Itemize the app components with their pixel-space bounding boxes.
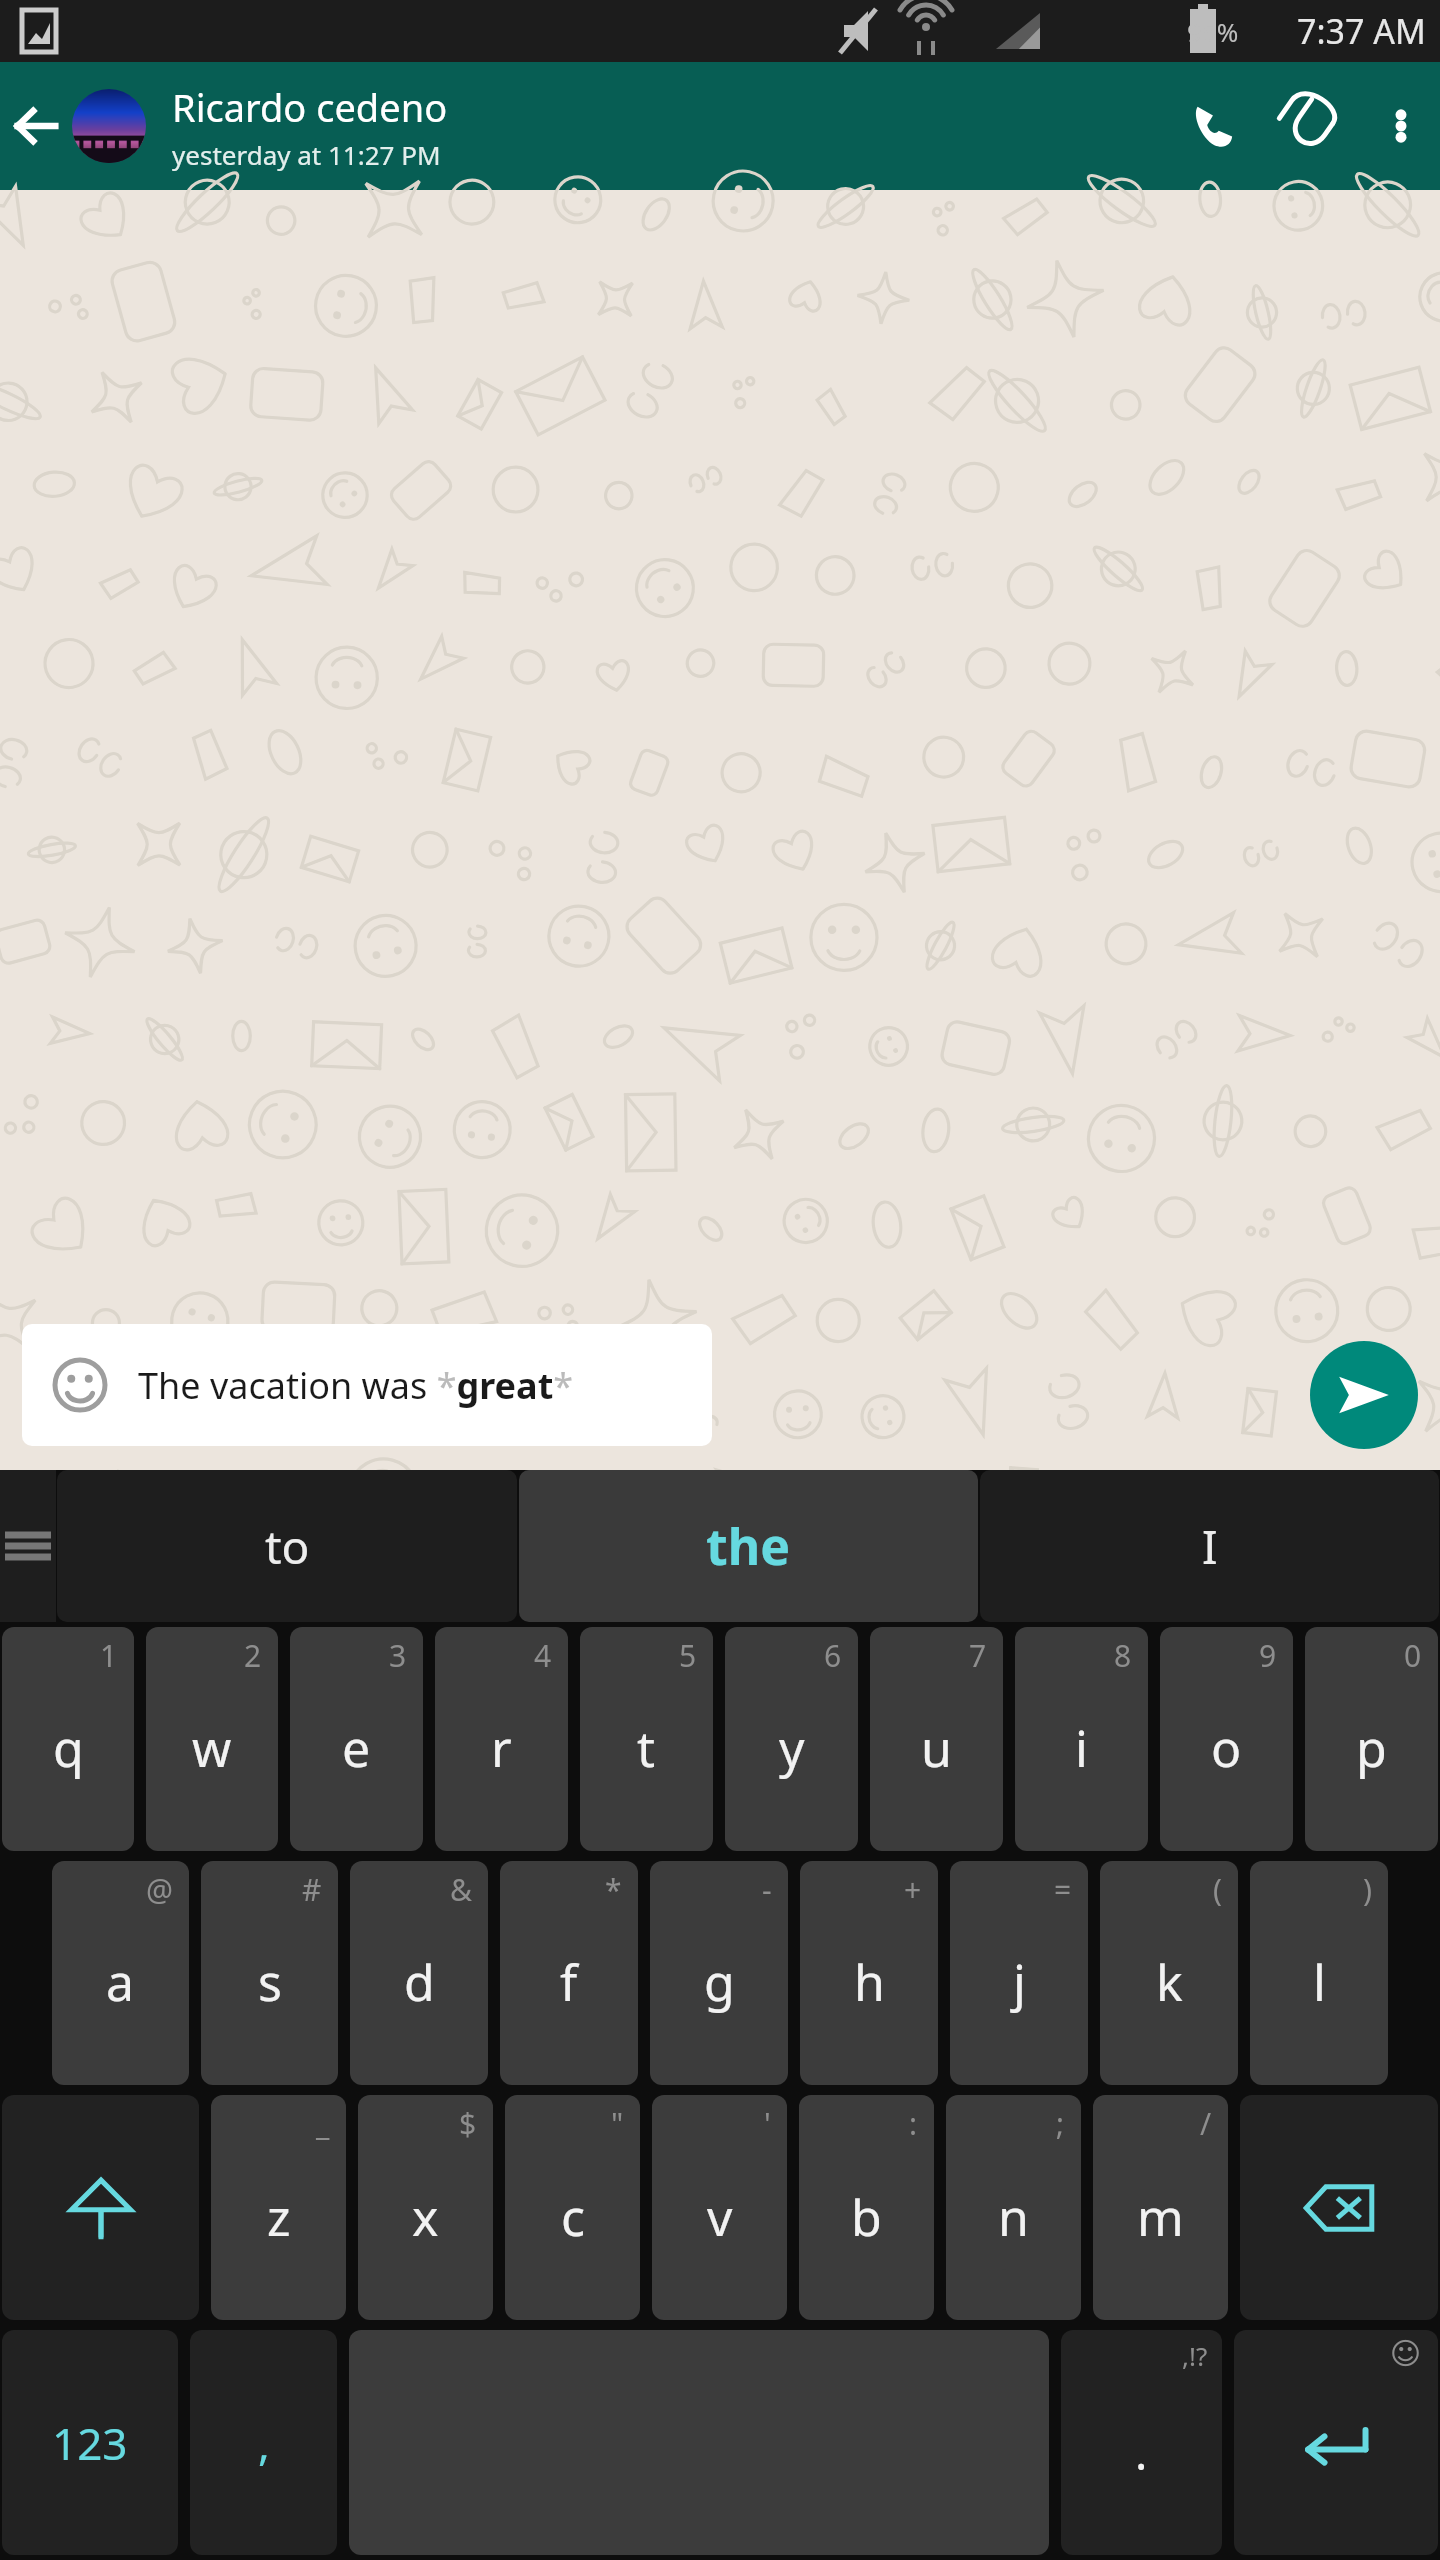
button[interactable]: 2 [146, 1627, 278, 1851]
button[interactable]: ,!? [1061, 2330, 1222, 2555]
staticText: _ [316, 2103, 330, 2144]
staticText: . [1135, 2421, 1148, 2484]
button[interactable]: 6 [725, 1627, 858, 1851]
staticText: $ [459, 2103, 477, 2144]
staticText: 3 [389, 1635, 407, 1676]
button[interactable]: ) [1250, 1861, 1388, 2085]
staticText: f [560, 1948, 578, 2016]
button[interactable]: * [500, 1861, 638, 2085]
staticText: a [106, 1948, 135, 2016]
button[interactable]: Attach [1262, 62, 1362, 190]
button[interactable]: ( [1100, 1861, 1238, 2085]
staticText: r [491, 1714, 512, 1782]
staticText: 9 [1259, 1635, 1277, 1676]
staticText: g [704, 1948, 735, 2016]
staticText: n [998, 2183, 1029, 2251]
button[interactable]: Call [1162, 62, 1262, 190]
staticText: 0 [1404, 1635, 1422, 1676]
button[interactable]: More options [1362, 62, 1440, 190]
staticText: * [605, 1869, 622, 1910]
staticText: 8 [1114, 1635, 1132, 1676]
staticText: 6 [824, 1635, 842, 1676]
staticText: Ricardo cedeno [172, 81, 448, 133]
button[interactable]: & [350, 1861, 488, 2085]
button[interactable]: # [201, 1861, 338, 2085]
staticText: t [637, 1714, 656, 1782]
staticText: 123 [52, 2413, 128, 2473]
button[interactable]: Menu [0, 1470, 56, 1622]
staticText: # [302, 1869, 322, 1910]
staticText: to [265, 1515, 310, 1578]
button[interactable]: - [650, 1861, 788, 2085]
button[interactable]: 5 [580, 1627, 713, 1851]
staticText: , [258, 2413, 270, 2473]
staticText: y [779, 1714, 805, 1782]
button[interactable]: 1 [2, 1627, 134, 1851]
button[interactable]: $ [358, 2095, 493, 2320]
button[interactable]: Back [0, 62, 72, 190]
staticText: I [1202, 1515, 1218, 1578]
staticText: the [706, 1512, 791, 1580]
staticText: k [1156, 1948, 1183, 2016]
staticText: + [904, 1869, 922, 1910]
button[interactable]: I [980, 1470, 1439, 1622]
staticText: l [1313, 1948, 1326, 2016]
button[interactable]: @ [52, 1861, 189, 2085]
button[interactable]: 9 [1160, 1627, 1293, 1851]
staticText: e [342, 1714, 371, 1782]
button[interactable]: 0 [1305, 1627, 1438, 1851]
staticText: 7:37 AM [1297, 8, 1426, 54]
button[interactable]: / [1093, 2095, 1228, 2320]
staticText: ) [1363, 1869, 1372, 1910]
button[interactable]: Ricardo cedeno [172, 62, 1162, 190]
staticText: 4 [534, 1635, 552, 1676]
button[interactable]: 7 [870, 1627, 1003, 1851]
staticText: 2 [244, 1635, 262, 1676]
button[interactable]: + [800, 1861, 938, 2085]
staticText: : [909, 2103, 918, 2144]
staticText: / [1200, 2103, 1212, 2144]
staticText: @ [146, 1869, 173, 1910]
staticText: ☺ [1390, 2336, 1422, 2371]
button[interactable]: to [57, 1470, 517, 1622]
staticText: 7 [969, 1635, 987, 1676]
staticText: ( [1213, 1869, 1222, 1910]
button[interactable]: ' [652, 2095, 787, 2320]
button[interactable]: Emoji [52, 1357, 108, 1413]
staticText: " [611, 2103, 624, 2144]
staticText: = [1054, 1869, 1072, 1910]
staticText: & [450, 1869, 472, 1910]
staticText: ,!? [1182, 2338, 1208, 2373]
button[interactable]: ; [946, 2095, 1081, 2320]
button[interactable]: Backspace [1240, 2095, 1438, 2320]
button[interactable]: 123 [2, 2330, 178, 2555]
staticText: v [707, 2183, 733, 2251]
staticText: - [762, 1869, 772, 1910]
staticText: z [267, 2183, 291, 2251]
staticText: x [412, 2183, 439, 2251]
staticText: i [1075, 1714, 1088, 1782]
button[interactable]: 3 [290, 1627, 423, 1851]
staticText: The vacation was *great* [138, 1361, 574, 1410]
button[interactable]: : [799, 2095, 934, 2320]
button[interactable]: , [190, 2330, 337, 2555]
staticText: q [53, 1714, 84, 1782]
button[interactable]: Emoji [22, 1324, 712, 1446]
staticText: c [561, 2183, 585, 2251]
staticText: h [854, 1948, 885, 2016]
button[interactable]: " [505, 2095, 640, 2320]
staticText: ; [1056, 2103, 1065, 2144]
button[interactable]: Shift [2, 2095, 199, 2320]
button[interactable]: 8 [1015, 1627, 1148, 1851]
staticText: yesterday at 11:27 PM [172, 137, 441, 172]
button[interactable] [72, 89, 146, 163]
button[interactable]: Enter [1234, 2330, 1438, 2555]
staticText: s [258, 1948, 282, 2016]
staticText: o [1211, 1714, 1242, 1782]
button[interactable]: _ [211, 2095, 346, 2320]
button[interactable]: 4 [435, 1627, 568, 1851]
button[interactable]: the [519, 1470, 978, 1622]
button[interactable]: = [950, 1861, 1088, 2085]
button[interactable]: Send [1310, 1341, 1418, 1449]
